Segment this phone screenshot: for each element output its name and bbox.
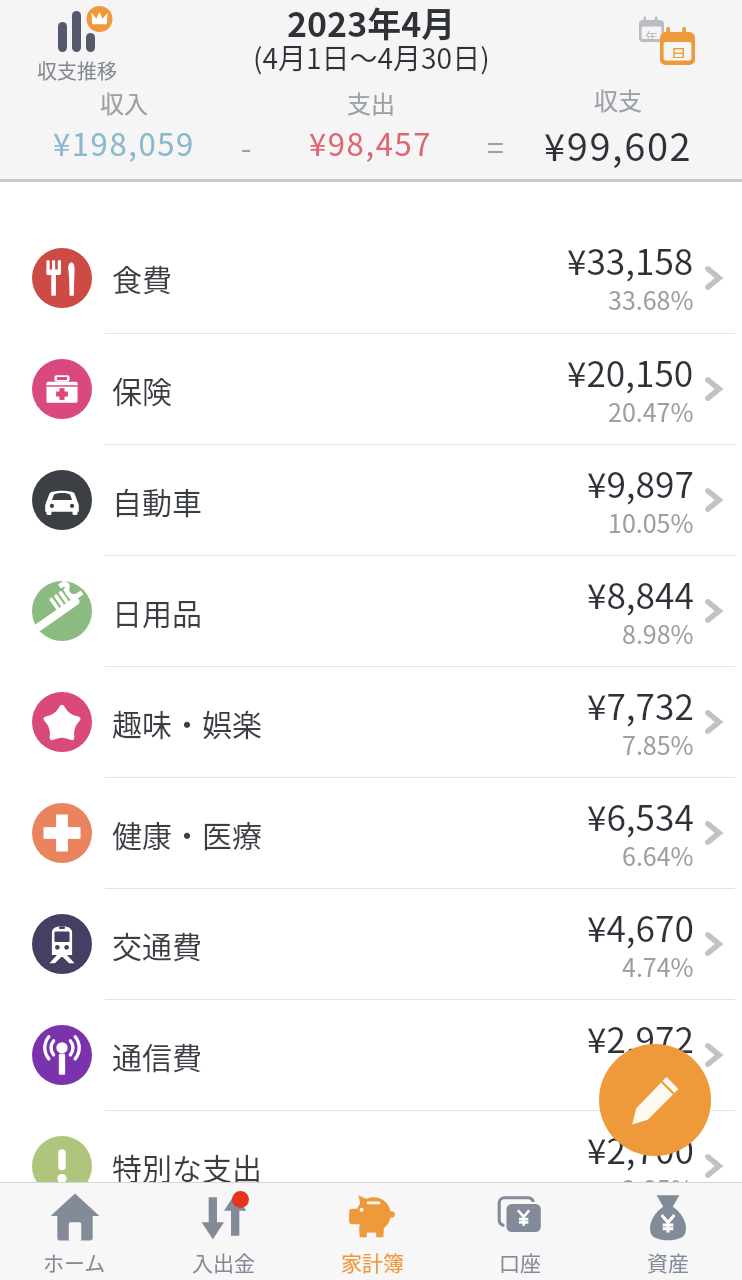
button[interactable]: 趣味・娯楽 (0, 667, 742, 777)
staticText: - (241, 124, 252, 154)
button[interactable]: 口座 (446, 1183, 594, 1280)
staticText: 口座 (499, 1247, 541, 1277)
staticText: ¥9,897 (587, 457, 694, 508)
staticText: 20.47% (608, 393, 694, 429)
staticText: 特別な支出 (112, 1145, 262, 1188)
button[interactable]: 保険 (0, 334, 742, 444)
staticText: 年 (645, 27, 659, 39)
button[interactable]: 日用品 (0, 556, 742, 666)
staticText: ¥4,670 (587, 901, 694, 952)
button[interactable]: 入出金 (149, 1183, 298, 1280)
staticText: ¥99,602 (544, 117, 693, 172)
staticText: ¥8,844 (587, 568, 694, 619)
staticText: 4.74% (622, 948, 694, 984)
staticText: ¥198,059 (53, 120, 195, 165)
staticText: ¥20,150 (567, 346, 694, 397)
staticText: 食費 (112, 256, 172, 299)
button[interactable]: ホーム (0, 1183, 149, 1280)
button[interactable]: 健康・医療 (0, 778, 742, 888)
staticText: 家計簿 (341, 1247, 404, 1277)
button[interactable]: 支出 (247, 85, 494, 165)
button[interactable]: 通信費 (0, 1000, 742, 1110)
button[interactable]: 自動車 (0, 445, 742, 555)
staticText: 保険 (112, 368, 172, 411)
staticText: ホーム (43, 1247, 106, 1277)
button[interactable]: 食費 (0, 222, 742, 333)
staticText: 6.64% (622, 837, 694, 873)
staticText: = (487, 124, 504, 154)
staticText: 健康・医療 (112, 812, 262, 855)
button[interactable]: 入力する (599, 1044, 711, 1156)
staticText: 収入 (100, 85, 148, 120)
staticText: ¥98,457 (309, 120, 433, 165)
staticText: 通信費 (112, 1034, 202, 1077)
staticText: (4月1日〜4月30日) (253, 37, 490, 78)
button[interactable]: 家計簿 (298, 1183, 446, 1280)
button[interactable]: 資産 (594, 1183, 742, 1280)
staticText: 収支推移 (37, 56, 117, 85)
staticText: ¥33,158 (567, 234, 694, 285)
staticText: 7.85% (622, 726, 694, 762)
staticText: 交通費 (112, 923, 202, 966)
button[interactable]: 収入 (0, 85, 247, 165)
staticText: 支出 (347, 85, 395, 120)
staticText: 8.98% (622, 615, 694, 651)
staticText: 収支 (594, 82, 642, 117)
staticText: 自動車 (112, 479, 202, 522)
button[interactable]: 特別な支出 (0, 1111, 742, 1221)
button[interactable]: 交通費 (0, 889, 742, 999)
staticText: ¥6,534 (587, 790, 694, 841)
staticText: ¥2,972 (587, 1012, 694, 1063)
staticText: 入出金 (192, 1247, 255, 1277)
staticText: 資産 (647, 1247, 689, 1277)
staticText: 趣味・娯楽 (112, 701, 262, 744)
button[interactable]: 表示期間の切替 (626, 8, 700, 70)
staticText: ¥7,732 (587, 679, 694, 730)
staticText: ¥2,700 (587, 1123, 694, 1174)
staticText: 10.05% (608, 504, 694, 540)
staticText: 2.85% (622, 1170, 694, 1206)
staticText: 33.68% (608, 281, 694, 317)
staticText: 日用品 (112, 590, 202, 633)
button[interactable]: 収支推移 (32, 3, 122, 87)
staticText: 月 (670, 42, 687, 58)
staticText: 3.02% (622, 1059, 694, 1095)
button[interactable]: 収支 (494, 82, 742, 172)
staticText: 2023年4月 (287, 0, 456, 47)
